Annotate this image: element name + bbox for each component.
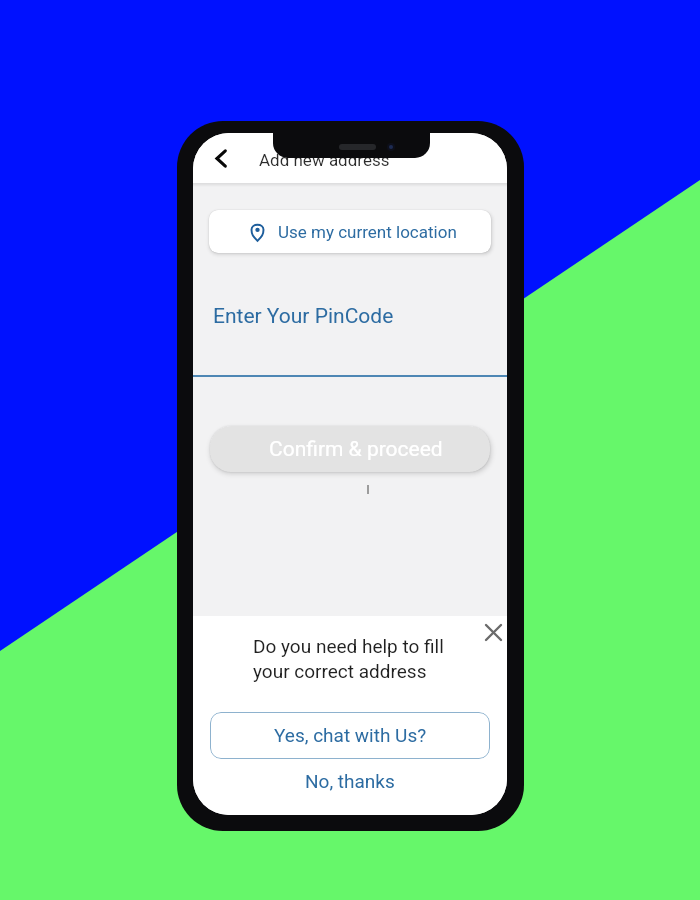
staticText: No, thanks (305, 770, 395, 792)
button[interactable]: No, thanks (193, 766, 507, 796)
staticText: Yes, chat with Us? (274, 724, 427, 746)
staticText: Confirm & proceed (269, 437, 443, 462)
staticText: your correct address (253, 660, 427, 682)
button[interactable]: Confirm & proceed (210, 426, 490, 472)
staticText: Add new address (259, 150, 390, 170)
staticText: Enter Your PinCode (213, 304, 394, 329)
button[interactable]: Back (204, 141, 238, 175)
button[interactable]: Yes, chat with Us? (210, 712, 490, 759)
staticText: Do you need help to fill (253, 635, 444, 657)
button[interactable]: Use my current location (209, 210, 491, 253)
staticText: Use my current location (278, 222, 457, 242)
button[interactable]: Close (478, 617, 507, 647)
